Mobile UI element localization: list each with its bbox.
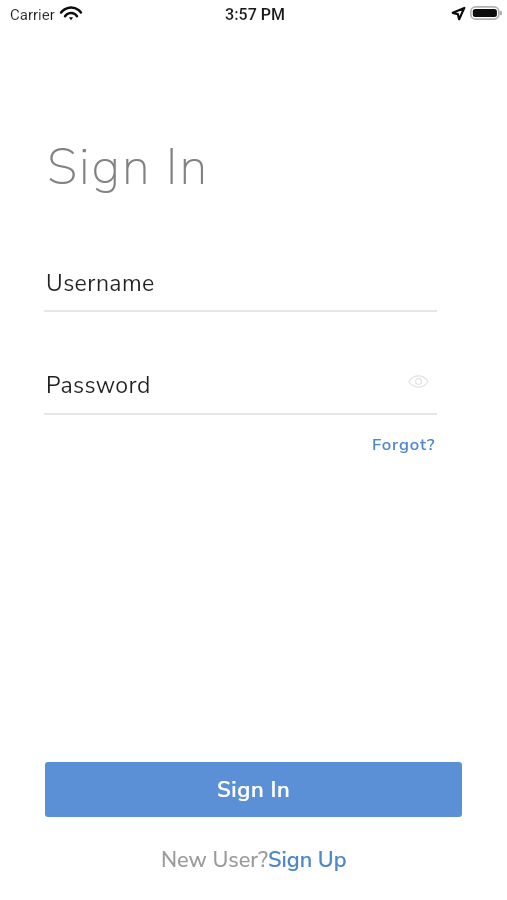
- staticText: Password: [46, 370, 151, 401]
- staticText: Forgot?: [372, 433, 436, 456]
- staticText: 3:57 PM: [225, 5, 286, 24]
- button[interactable]: Password: [44, 361, 437, 415]
- button[interactable]: Forgot?: [360, 427, 448, 462]
- staticText: Sign Up: [268, 845, 347, 871]
- staticText: New User?: [161, 845, 268, 871]
- button[interactable]: Sign Up: [268, 845, 347, 871]
- staticText: Sign In: [47, 133, 210, 201]
- staticText: Sign In: [217, 775, 291, 805]
- staticText: Username: [46, 268, 155, 299]
- button[interactable]: Show password: [402, 365, 434, 397]
- button[interactable]: Username: [44, 258, 437, 312]
- staticText: Carrier: [10, 6, 55, 24]
- button[interactable]: Sign In: [45, 762, 462, 817]
